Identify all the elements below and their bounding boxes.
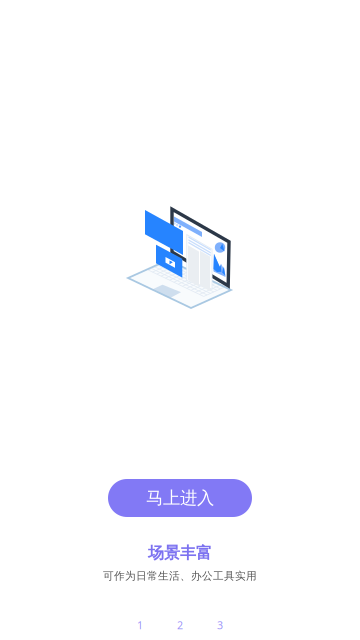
staticText: 2 <box>177 618 183 632</box>
staticText: 3 <box>217 618 223 632</box>
button[interactable]: 马上进入 <box>108 479 252 517</box>
staticText: 马上进入 <box>146 487 214 509</box>
staticText: 1 <box>137 618 143 632</box>
staticText: 场景丰富 <box>148 543 212 563</box>
staticText: 可作为日常生活、办公工具实用 <box>103 569 257 582</box>
